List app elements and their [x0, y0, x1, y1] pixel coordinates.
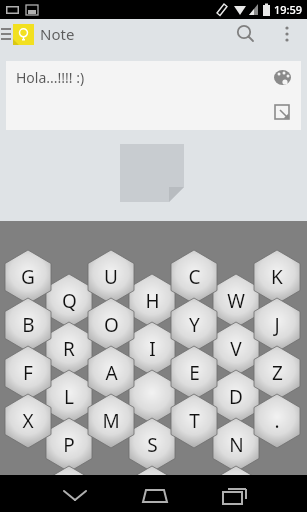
button[interactable]: I: [129, 322, 175, 376]
button[interactable]: X: [5, 394, 51, 448]
button[interactable]: Y: [171, 298, 217, 352]
button[interactable]: S: [129, 418, 175, 472]
button[interactable]: J: [254, 298, 300, 352]
button[interactable]: Search: [228, 19, 264, 49]
button[interactable]: M: [88, 394, 134, 448]
staticText: Q: [62, 288, 77, 314]
staticText: Z: [272, 360, 283, 386]
staticText: E: [189, 360, 200, 386]
staticText: X: [22, 408, 34, 434]
staticText: J: [274, 312, 280, 338]
button[interactable]: Space: [129, 370, 175, 424]
button[interactable]: Z: [254, 346, 300, 400]
staticText: .: [274, 408, 280, 434]
button[interactable]: V: [213, 322, 259, 376]
button[interactable]: Shift: [46, 466, 92, 512]
button[interactable]: W: [213, 274, 259, 328]
button[interactable]: Resize: [271, 101, 295, 125]
staticText: N: [229, 432, 244, 458]
button[interactable]: Numbers: [129, 466, 175, 512]
staticText: O: [104, 312, 119, 338]
button[interactable]: More options: [272, 19, 302, 49]
button[interactable]: A: [88, 346, 134, 400]
button[interactable]: D: [213, 370, 259, 424]
button[interactable]: K: [254, 250, 300, 304]
staticText: G: [21, 264, 35, 290]
button[interactable]: L: [46, 370, 92, 424]
staticText: T: [189, 408, 200, 434]
staticText: D: [229, 384, 243, 410]
staticText: U: [104, 264, 118, 290]
button[interactable]: .: [254, 394, 300, 448]
staticText: C: [188, 264, 201, 290]
button[interactable]: Hola...!!!! :): [6, 61, 301, 130]
button[interactable]: Color palette: [271, 67, 295, 91]
staticText: H: [145, 288, 160, 314]
button[interactable]: N: [213, 418, 259, 472]
button[interactable]: P: [46, 418, 92, 472]
button[interactable]: Home: [120, 475, 190, 512]
staticText: L: [64, 384, 74, 410]
staticText: 123: [143, 486, 162, 501]
button[interactable]: Q: [46, 274, 92, 328]
staticText: F: [23, 360, 33, 386]
staticText: 19:59: [274, 2, 303, 17]
staticText: R: [63, 336, 75, 362]
staticText: V: [230, 336, 242, 362]
button[interactable]: C: [171, 250, 217, 304]
button[interactable]: Hide keyboard: [40, 475, 110, 512]
staticText: S: [147, 432, 158, 458]
staticText: I: [149, 336, 156, 362]
staticText: Hola...!!!! :): [16, 68, 85, 87]
staticText: Y: [189, 312, 200, 338]
button[interactable]: Backspace: [213, 466, 259, 512]
button[interactable]: App icon: [13, 24, 34, 45]
staticText: K: [271, 264, 283, 290]
button[interactable]: G: [5, 250, 51, 304]
button[interactable]: E: [171, 346, 217, 400]
button[interactable]: R: [46, 322, 92, 376]
button[interactable]: T: [171, 394, 217, 448]
staticText: W: [227, 288, 245, 314]
button[interactable]: H: [129, 274, 175, 328]
staticText: P: [63, 432, 75, 458]
staticText: M: [102, 408, 120, 434]
staticText: A: [105, 360, 118, 386]
button[interactable]: F: [5, 346, 51, 400]
button[interactable]: Menu: [0, 19, 16, 49]
button[interactable]: B: [5, 298, 51, 352]
button[interactable]: Recent apps: [200, 475, 270, 512]
staticText: Note: [40, 24, 75, 44]
staticText: B: [22, 312, 35, 338]
button[interactable]: U: [88, 250, 134, 304]
button[interactable]: O: [88, 298, 134, 352]
